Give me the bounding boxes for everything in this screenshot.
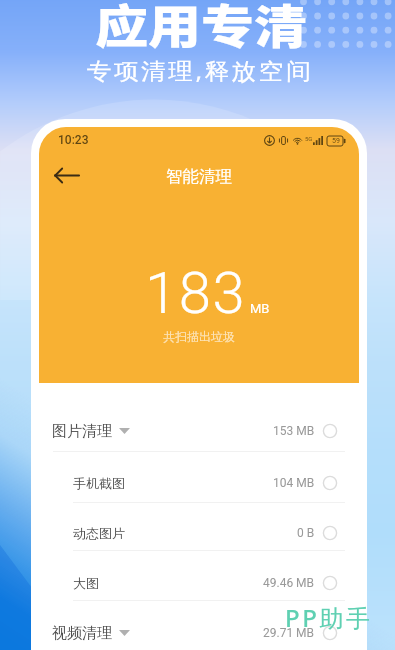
staticText: 153 MB (273, 424, 315, 438)
button[interactable]: 动态图片 (39, 508, 359, 558)
staticText: 视频清理 (52, 624, 112, 643)
staticText: 动态图片 (73, 525, 125, 541)
staticText: PP助手 (285, 601, 373, 634)
staticText: 183 (145, 259, 247, 327)
staticText: 10:23 (58, 133, 89, 147)
staticText: 共扫描出垃圾 (163, 329, 235, 344)
button[interactable]: 大图 (39, 558, 359, 608)
staticText: 5G (305, 135, 313, 142)
button[interactable]: 视频清理 (39, 608, 359, 650)
button[interactable]: 图片清理 (39, 404, 359, 458)
staticText: 49.46 MB (263, 576, 315, 590)
staticText: 智能清理 (166, 166, 232, 187)
staticText: 29.71 MB (263, 626, 315, 640)
staticText: 104 MB (273, 476, 315, 490)
staticText: MB (250, 301, 270, 316)
staticText: 手机截图 (73, 475, 125, 491)
staticText: 图片清理 (52, 422, 112, 441)
staticText: 大图 (73, 575, 99, 591)
staticText: 0 B (297, 526, 315, 540)
button[interactable]: 手机截图 (39, 458, 359, 508)
button[interactable]: Back (47, 155, 87, 195)
staticText: 59 (332, 137, 340, 145)
staticText: 应用专清 (95, 0, 307, 57)
staticText: 专项清理,释放空间 (87, 55, 313, 86)
